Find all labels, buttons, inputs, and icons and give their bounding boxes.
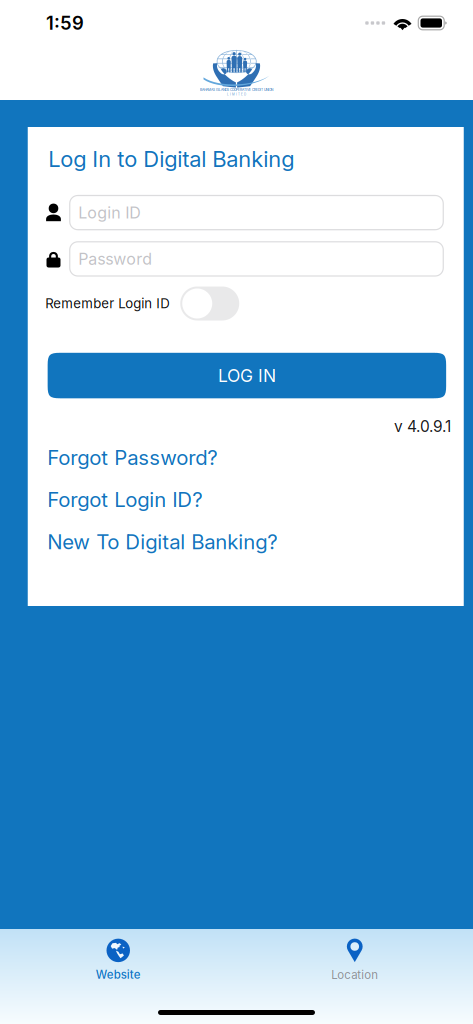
staticText: Password — [78, 249, 152, 269]
staticText: LOG IN — [218, 365, 276, 386]
staticText: BAHAMAS ISLANDS COOPERATIVE CREDIT UNION — [200, 88, 273, 92]
button[interactable]: Forgot Login ID? — [47, 485, 445, 515]
button[interactable]: LOG IN — [48, 353, 446, 398]
staticText: New To Digital Banking? — [47, 530, 277, 554]
staticText: Login ID — [78, 203, 141, 222]
staticText: Remember Login ID — [45, 295, 170, 311]
button[interactable]: Website — [0, 939, 236, 982]
staticText: Location — [331, 968, 378, 982]
staticText: Log In to Digital Banking — [48, 146, 294, 172]
button[interactable]: New To Digital Banking? — [47, 527, 445, 557]
button[interactable]: Remember Login ID — [180, 286, 239, 320]
staticText: Website — [96, 968, 141, 982]
button[interactable]: Location — [236, 938, 473, 982]
button[interactable]: Forgot Password? — [47, 442, 445, 472]
staticText: v 4.0.9.1 — [394, 417, 451, 436]
staticText: 1:59 — [46, 12, 84, 34]
staticText: L I M I T E D — [227, 93, 246, 96]
staticText: Forgot Login ID? — [47, 487, 202, 512]
staticText: Forgot Password? — [47, 445, 217, 470]
